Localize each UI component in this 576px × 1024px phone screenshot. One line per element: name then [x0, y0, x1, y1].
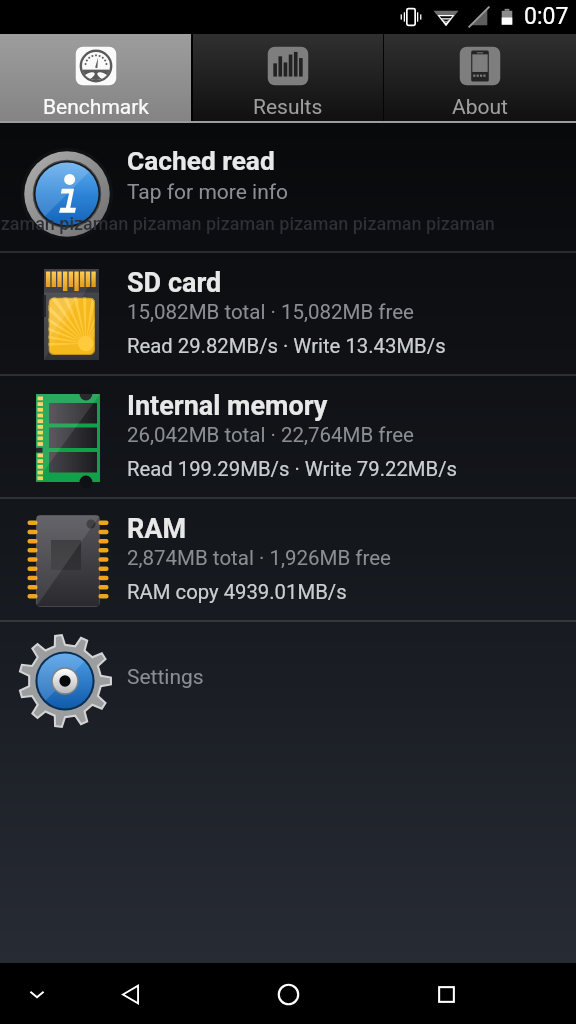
staticText: pizaman pizaman pizaman pizaman pizaman … [0, 213, 562, 234]
staticText: Results [253, 95, 323, 120]
button[interactable]: Internal memory [0, 376, 576, 497]
button[interactable]: RAM [0, 499, 576, 620]
button[interactable]: Back [101, 965, 159, 1023]
staticText: RAM copy 4939.01MB/s [127, 580, 347, 604]
button[interactable]: Hide keyboard [8, 965, 66, 1023]
staticText: 0:07 [524, 3, 569, 30]
staticText: Read 29.82MB/s · Write 13.43MB/s [127, 334, 446, 358]
staticText: Cached read [127, 146, 275, 177]
staticText: About [452, 95, 508, 120]
staticText: RAM [127, 513, 187, 545]
staticText: Read 199.29MB/s · Write 79.22MB/s [127, 457, 458, 481]
button[interactable]: Cached read [0, 123, 576, 251]
staticText: 26,042MB total · 22,764MB free [127, 423, 414, 447]
button[interactable]: Settings [0, 622, 576, 742]
staticText: SD card [127, 267, 222, 299]
button[interactable]: SD card [0, 253, 576, 374]
staticText: Tap for more info [127, 180, 289, 205]
staticText: Settings [127, 665, 204, 690]
button[interactable]: Recents [417, 965, 475, 1023]
button[interactable]: About [384, 34, 576, 121]
button[interactable]: Results [192, 34, 384, 121]
button[interactable]: Home [259, 965, 317, 1023]
staticText: Benchmark [43, 95, 149, 120]
staticText: 2,874MB total · 1,926MB free [127, 546, 391, 570]
button[interactable]: Benchmark [0, 34, 192, 121]
staticText: Internal memory [127, 390, 328, 422]
staticText: 15,082MB total · 15,082MB free [127, 300, 414, 324]
